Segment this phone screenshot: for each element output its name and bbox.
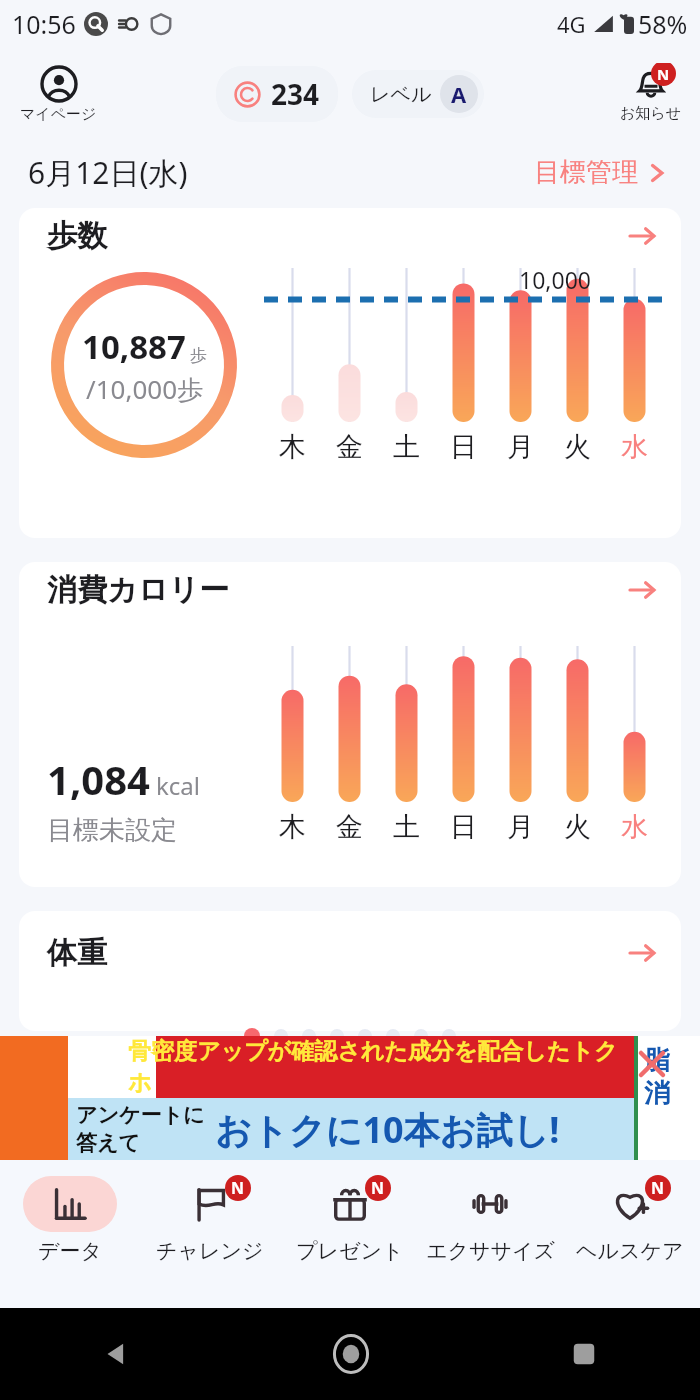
button[interactable]: N	[560, 1160, 700, 1308]
button[interactable]: 体重	[19, 911, 681, 1031]
staticText: 日	[450, 430, 477, 464]
staticText: N	[651, 1177, 665, 1199]
staticText: マイページ	[20, 105, 97, 124]
other: 最近のアプリ	[568, 1338, 600, 1370]
staticText: 土	[393, 810, 420, 844]
button[interactable]: 歩数	[19, 208, 681, 538]
staticText: 骨密度アップが確認された成分を配合したトクホ	[128, 1037, 634, 1097]
staticText: 水	[621, 810, 648, 844]
staticText: ヘルスケア	[576, 1238, 684, 1264]
button[interactable]: N	[280, 1160, 420, 1308]
staticText: 木	[279, 810, 306, 844]
staticText: 歩数	[47, 217, 107, 255]
staticText: A	[451, 79, 467, 109]
staticText: お知らせ	[620, 104, 682, 123]
staticText: 月	[507, 810, 534, 844]
button[interactable]: エクササイズ	[420, 1160, 560, 1308]
staticText: N	[371, 1177, 385, 1199]
staticText: /10,000歩	[86, 371, 204, 407]
staticText: チャレンジ	[156, 1238, 264, 1264]
staticText: 10:56	[12, 7, 76, 41]
staticText: 1,084	[47, 752, 150, 806]
button[interactable]: 234	[216, 66, 338, 122]
staticText: プレゼント	[296, 1238, 404, 1264]
staticText: 日	[450, 810, 477, 844]
button[interactable]: 閉じる	[632, 1044, 672, 1084]
staticText: 金	[336, 430, 363, 464]
staticText: N	[657, 64, 670, 84]
staticText: 脂	[644, 1044, 670, 1077]
button[interactable]: 詳細	[627, 575, 657, 605]
staticText: 目標管理	[534, 156, 638, 189]
staticText: おトクに10本お試し!	[215, 1105, 560, 1154]
button[interactable]: N	[140, 1160, 280, 1308]
staticText: 目標未設定	[47, 814, 177, 847]
button[interactable]: 消費カロリー	[19, 562, 681, 887]
button[interactable]: お知らせ	[616, 63, 686, 125]
staticText: N	[231, 1177, 245, 1199]
staticText: 歩	[190, 345, 207, 366]
staticText: 4G	[557, 9, 586, 39]
staticText: 水	[621, 430, 648, 464]
staticText: 金	[336, 810, 363, 844]
button[interactable]: 詳細	[627, 938, 657, 968]
staticText: 消	[644, 1077, 670, 1110]
other: ホーム	[328, 1331, 374, 1377]
staticText: アンケートに 答えて	[76, 1102, 205, 1156]
button[interactable]: 詳細	[627, 221, 657, 251]
staticText: 10,887	[82, 324, 186, 369]
staticText: 体重	[47, 934, 107, 972]
staticText: kcal	[156, 769, 200, 802]
staticText: 月	[507, 430, 534, 464]
staticText: 消費カロリー	[47, 571, 230, 609]
button[interactable]: 目標管理	[530, 152, 672, 193]
staticText: レベル	[370, 82, 432, 107]
button[interactable]: マイページ	[14, 63, 103, 126]
staticText: 土	[393, 430, 420, 464]
other: 戻る	[100, 1337, 134, 1371]
staticText: データ	[38, 1238, 102, 1264]
staticText: 234	[271, 75, 320, 113]
staticText: 6月12日(水)	[28, 152, 188, 193]
staticText: 10,000	[519, 264, 591, 295]
staticText: 火	[564, 810, 591, 844]
button[interactable]: レベル	[352, 70, 484, 118]
staticText: 58%	[638, 7, 688, 41]
button[interactable]: データ	[0, 1160, 140, 1308]
staticText: エクササイズ	[426, 1238, 555, 1264]
staticText: 木	[279, 430, 306, 464]
staticText: 火	[564, 430, 591, 464]
